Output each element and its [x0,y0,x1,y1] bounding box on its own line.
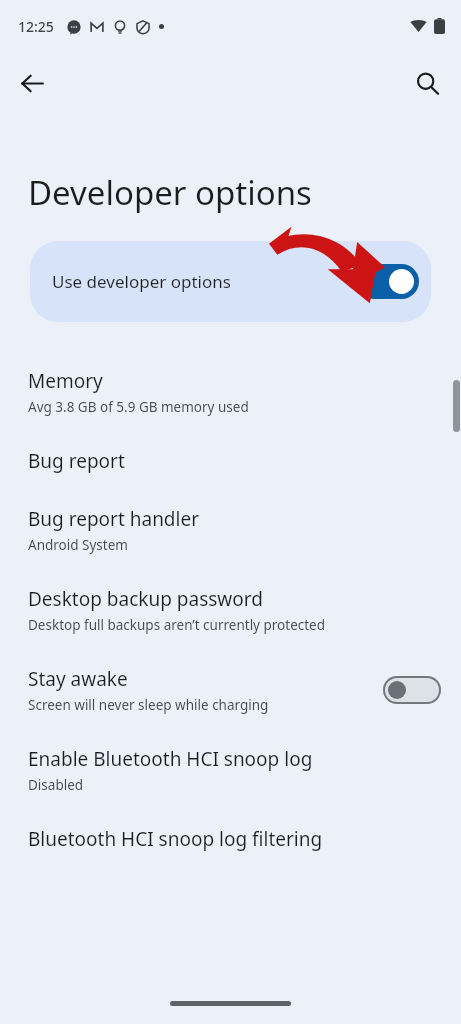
staticText: Avg 3.8 GB of 5.9 GB memory used [28,398,249,416]
staticText: Desktop full backups aren’t currently pr… [28,616,326,634]
button[interactable]: Stay awake toggle [383,676,441,704]
staticText: 12:25 [18,17,54,36]
button[interactable]: Bluetooth HCI snoop log filtering [0,810,461,868]
staticText: Use developer options [52,270,357,293]
staticText: Memory [28,368,103,394]
staticText: Bug report handler [28,506,200,532]
button[interactable]: Back [8,59,56,107]
button[interactable]: Desktop backup password [0,570,461,650]
staticText: Enable Bluetooth HCI snoop log [28,746,313,772]
staticText: Bluetooth HCI snoop log filtering [28,826,323,852]
staticText: Developer options [28,170,312,215]
button[interactable]: Bug report [0,432,461,490]
button[interactable]: Memory [0,352,461,432]
staticText: Desktop backup password [28,586,263,612]
staticText: Bug report [28,448,125,474]
staticText: Disabled [28,776,84,794]
staticText: Android System [28,536,128,554]
staticText: Stay awake [28,666,128,692]
button[interactable]: Stay awake [0,650,461,730]
button[interactable]: Enable Bluetooth HCI snoop log [0,730,461,810]
button[interactable]: Search [403,59,451,107]
button[interactable]: Bug report handler [0,490,461,570]
button[interactable]: Use developer options [30,241,431,322]
button[interactable]: Use developer options toggle [357,264,419,299]
staticText: Screen will never sleep while charging [28,696,269,714]
